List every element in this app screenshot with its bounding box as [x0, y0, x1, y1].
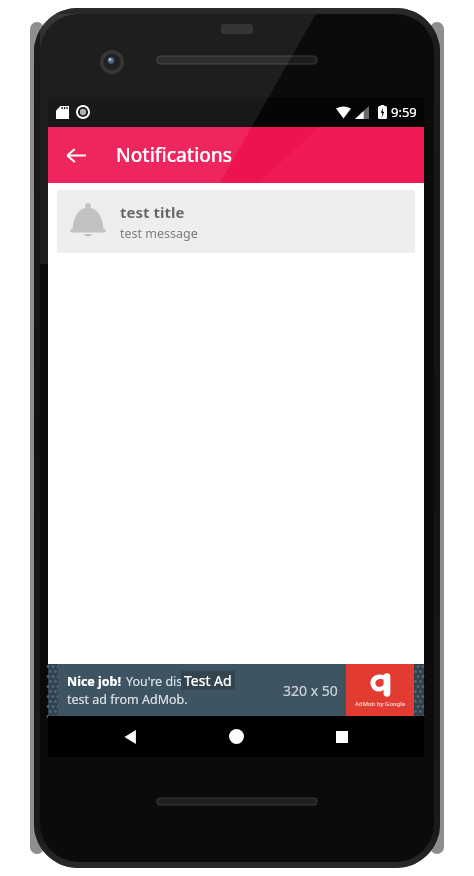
button[interactable]: Home	[212, 716, 260, 757]
button[interactable]: Recent apps	[318, 716, 366, 757]
staticText: Notifications	[116, 142, 233, 168]
staticText: test message	[120, 225, 198, 242]
staticText: AdMob by Google	[355, 700, 406, 708]
button[interactable]: Test advertisement banner	[48, 664, 424, 716]
staticText: test ad from AdMob.	[67, 691, 188, 708]
staticText: 9:59	[391, 103, 417, 121]
staticText: 320 x 50	[283, 681, 338, 700]
button[interactable]: Back	[106, 716, 154, 757]
staticText: You're displaying a	[126, 673, 236, 690]
staticText: Nice job!	[67, 673, 122, 690]
staticText: Test Ad	[184, 671, 232, 690]
button[interactable]: Back	[52, 131, 100, 179]
button[interactable]: test title	[57, 190, 415, 253]
staticText: test title	[120, 202, 185, 222]
